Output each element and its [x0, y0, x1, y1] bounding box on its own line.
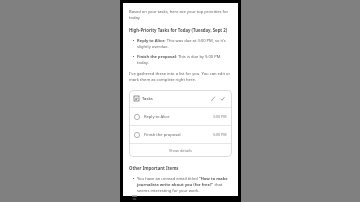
staticText: 5:00 PM — [213, 132, 227, 137]
staticText: Other Important Items — [129, 165, 179, 171]
staticText: 3:00 PM — [213, 114, 227, 119]
staticText: Finish the proposal — [144, 132, 181, 138]
staticText: High-Priority Tasks for Today (Tuesday, … — [129, 27, 228, 33]
staticText: You have an unread email titled "How to … — [137, 176, 232, 194]
staticText: Reply to Alice: This was due at 3:00 PM,… — [137, 38, 232, 50]
button[interactable]: Edit tasks — [209, 94, 218, 103]
button[interactable]: Finish the proposal — [129, 126, 232, 143]
staticText: Based on your tasks, here are your top p… — [129, 9, 232, 21]
button[interactable]: Reply to Alice — [129, 108, 232, 125]
staticText: I've gathered these into a list for you.… — [129, 71, 232, 83]
button[interactable]: Show details — [129, 144, 232, 157]
staticText: Reply to Alice — [144, 114, 170, 120]
staticText: Finish the proposal: This is due by 5:00… — [137, 54, 232, 66]
button[interactable]: Tasks — [129, 90, 232, 107]
staticText: Tasks — [142, 96, 153, 102]
button[interactable]: Confirm tasks — [218, 94, 227, 103]
staticText: Show details — [169, 148, 192, 153]
